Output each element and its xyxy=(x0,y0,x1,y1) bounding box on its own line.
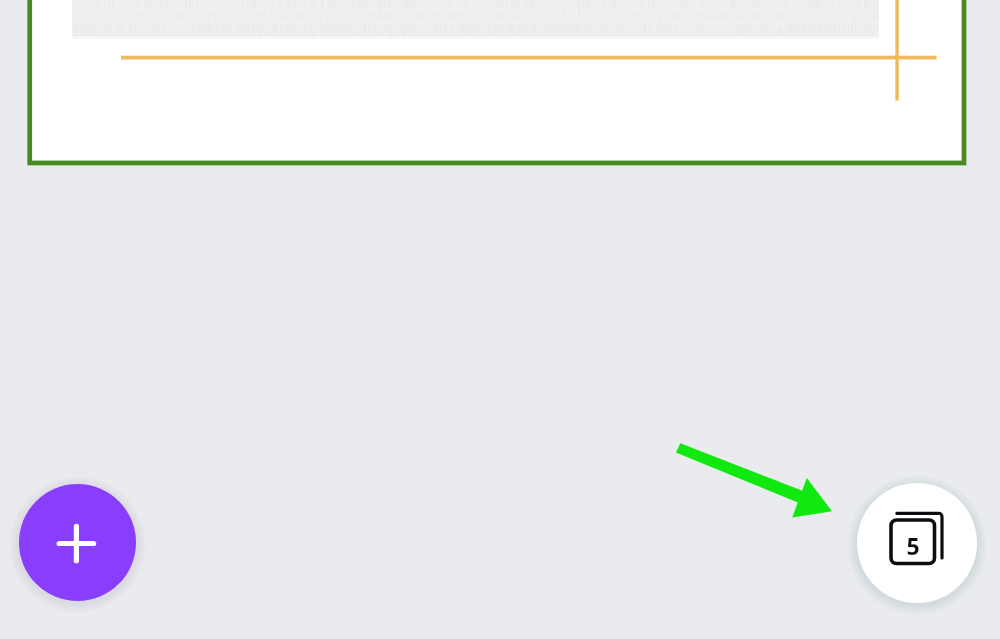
button[interactable]: Switch or close tabs, 5 open xyxy=(857,483,977,603)
staticText: 5 xyxy=(891,530,935,562)
button[interactable]: New tab xyxy=(19,484,136,601)
